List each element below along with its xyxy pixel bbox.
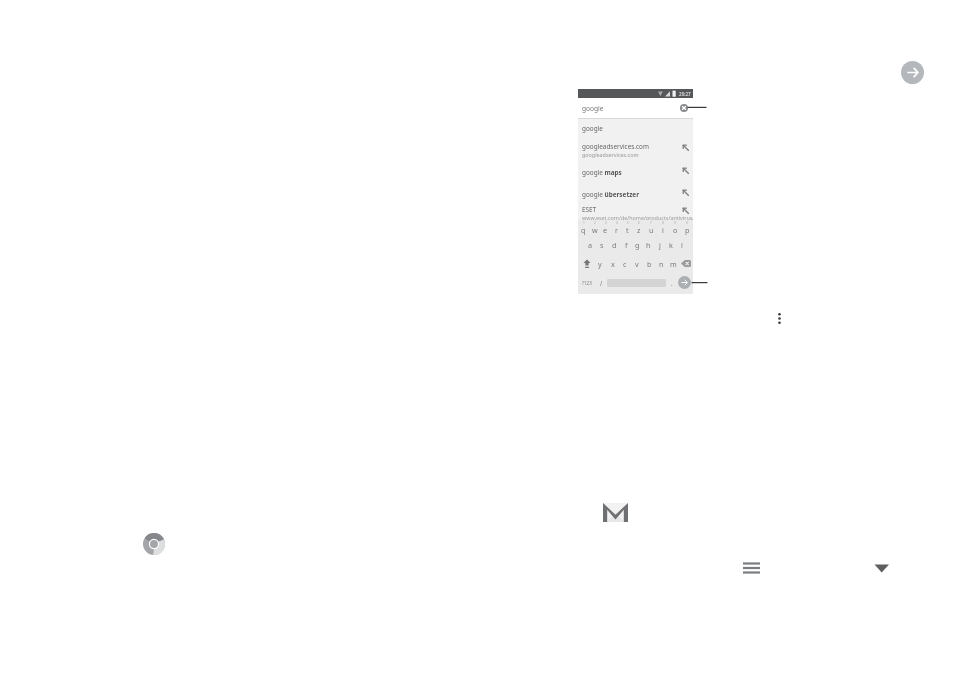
staticText: x	[611, 259, 615, 269]
button[interactable]: s	[596, 240, 608, 250]
staticText: 1	[583, 221, 585, 225]
button[interactable]: k	[665, 240, 676, 250]
staticText: k	[669, 240, 673, 250]
button[interactable]: u	[645, 225, 657, 235]
button[interactable]: p	[681, 225, 693, 235]
button[interactable]: h	[643, 240, 654, 250]
staticText: n	[659, 259, 664, 269]
button[interactable]: z	[633, 225, 645, 235]
button[interactable]: b	[643, 259, 655, 269]
button[interactable]: .	[666, 279, 678, 287]
staticText: v	[635, 259, 639, 269]
button[interactable]: googleadservices.com	[578, 138, 693, 161]
button[interactable]: Dropdown	[872, 560, 891, 576]
staticText: d	[612, 240, 617, 250]
button[interactable]: q	[578, 225, 589, 235]
button[interactable]: More options	[771, 308, 787, 330]
staticText: t	[626, 225, 629, 235]
button[interactable]: r	[611, 225, 622, 235]
staticText: u	[649, 225, 654, 235]
button[interactable]: Clear	[680, 104, 688, 112]
button[interactable]: /	[596, 279, 607, 287]
button[interactable]: e	[600, 225, 611, 235]
staticText: o	[673, 225, 678, 235]
staticText: 0	[686, 221, 688, 225]
staticText: c	[623, 259, 627, 269]
button[interactable]: google maps	[578, 161, 693, 184]
button[interactable]: g	[632, 240, 643, 250]
staticText: p	[685, 225, 690, 235]
button[interactable]: l	[676, 240, 687, 250]
staticText: 9	[674, 221, 676, 225]
button[interactable]: Go	[678, 276, 691, 289]
staticText: m	[670, 259, 677, 269]
staticText: google maps	[582, 168, 622, 177]
button[interactable]: w	[589, 225, 600, 235]
staticText: google übersetzer	[582, 190, 639, 199]
button[interactable]: ESET	[578, 205, 693, 220]
button[interactable]: x	[606, 259, 619, 269]
staticText: googleadservices.com	[582, 142, 649, 151]
staticText: /	[600, 279, 603, 287]
button[interactable]: d	[608, 240, 620, 250]
staticText: 6	[638, 221, 640, 225]
staticText: w	[592, 225, 598, 235]
staticText: a	[588, 240, 593, 250]
staticText: i	[662, 225, 664, 235]
button[interactable]: Next	[901, 61, 924, 84]
button[interactable]: Backspace	[679, 260, 693, 267]
staticText: .	[671, 279, 673, 287]
staticText: h	[646, 240, 651, 250]
button[interactable]: Gmail	[603, 503, 628, 522]
staticText: ESET	[582, 205, 597, 214]
staticText: g	[635, 240, 640, 250]
button[interactable]: google übersetzer	[578, 184, 693, 205]
staticText: 4	[616, 221, 618, 225]
staticText: b	[647, 259, 652, 269]
staticText: e	[603, 225, 608, 235]
staticText: google	[582, 104, 604, 113]
button[interactable]: a	[584, 240, 596, 250]
staticText: l	[681, 240, 683, 250]
staticText: s	[600, 240, 604, 250]
button[interactable]: Menu	[741, 558, 761, 578]
button[interactable]: i	[657, 225, 669, 235]
button[interactable]: n	[655, 259, 667, 269]
button[interactable]: Shift	[580, 259, 593, 268]
staticText: 8	[662, 221, 664, 225]
staticText: r	[615, 225, 618, 235]
button[interactable]: ?123	[578, 280, 596, 286]
button[interactable]: j	[654, 240, 665, 250]
button[interactable]: y	[593, 259, 606, 269]
staticText: 5	[627, 221, 629, 225]
button[interactable]: t	[622, 225, 633, 235]
staticText: j	[659, 240, 661, 250]
staticText: 3	[605, 221, 607, 225]
staticText: 7	[650, 221, 652, 225]
button[interactable]: Chrome	[143, 533, 165, 555]
staticText: q	[581, 225, 586, 235]
staticText: 20:27	[679, 91, 691, 97]
staticText: 2	[594, 221, 596, 225]
staticText: www.eset.com/de/home/products/antivirus/…	[582, 214, 693, 220]
staticText: googleadservices.com	[582, 151, 639, 158]
button[interactable]: o	[669, 225, 681, 235]
button[interactable]: v	[631, 259, 643, 269]
staticText: google	[582, 124, 603, 133]
button[interactable]: m	[667, 259, 679, 269]
button[interactable]: c	[619, 259, 631, 269]
staticText: y	[598, 259, 602, 269]
button[interactable]: f	[620, 240, 632, 250]
staticText: z	[637, 225, 641, 235]
button[interactable]: google	[578, 119, 693, 138]
staticText: f	[625, 240, 628, 250]
staticText: ?123	[582, 280, 592, 286]
